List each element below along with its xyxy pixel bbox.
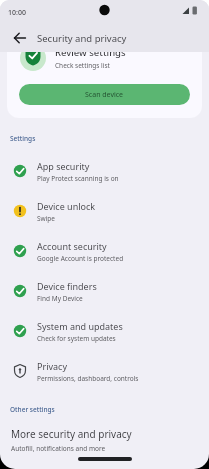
staticText: Find My Device	[37, 294, 83, 303]
button[interactable]: Account security	[0, 231, 209, 271]
staticText: Security and privacy	[37, 32, 127, 45]
button[interactable]: More security and privacy	[0, 427, 209, 453]
staticText: Scan device	[85, 90, 124, 100]
staticText: Check for system updates	[37, 334, 116, 343]
button[interactable]: System and updates	[0, 311, 209, 351]
staticText: 10:00	[8, 8, 26, 18]
staticText: App security	[37, 160, 90, 172]
button[interactable]: Scan device	[19, 84, 190, 105]
staticText: Privacy	[37, 360, 68, 372]
staticText: Permissions, dashboard, controls	[37, 374, 139, 383]
staticText: More security and privacy	[11, 427, 132, 441]
button[interactable]: Privacy	[0, 351, 209, 391]
button[interactable]: Device finders	[0, 271, 209, 311]
staticText: Swipe	[37, 214, 56, 223]
staticText: System and updates	[37, 320, 123, 332]
staticText: Account security	[37, 240, 107, 252]
button[interactable]	[7, 25, 33, 51]
staticText: Autofill, notifications and more	[11, 444, 106, 453]
staticText: Check settings list	[55, 61, 110, 70]
staticText: Google Account is protected	[37, 254, 124, 263]
staticText: Review settings	[55, 52, 126, 59]
button[interactable]: App security	[0, 151, 209, 191]
staticText: Other settings	[10, 405, 55, 414]
staticText: Settings	[10, 134, 36, 143]
button[interactable]: Device unlock	[0, 191, 209, 231]
staticText: Device unlock	[37, 200, 96, 212]
staticText: Play Protect scanning is on	[37, 174, 119, 183]
staticText: Device finders	[37, 280, 97, 292]
